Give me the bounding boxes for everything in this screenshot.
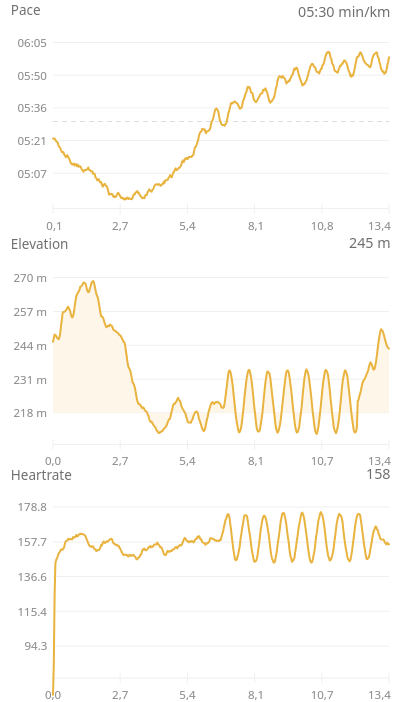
button[interactable] <box>0 0 400 702</box>
